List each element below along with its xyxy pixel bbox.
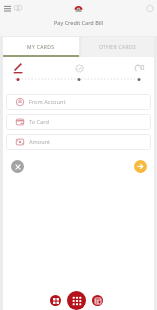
button[interactable]: Quick links — [50, 295, 61, 306]
staticText: MY CARDS — [27, 44, 55, 51]
button[interactable]: Next — [134, 160, 147, 173]
staticText: From Account — [29, 98, 66, 106]
button[interactable]: All services — [67, 291, 86, 310]
staticText: To Card — [29, 118, 49, 126]
button[interactable]: Step 1 — [10, 57, 26, 84]
staticText: Pay Credit Card Bill — [54, 19, 103, 26]
staticText: Amount — [29, 138, 51, 146]
staticText: OTHER CARDS — [99, 44, 137, 51]
button[interactable]: MY CARDS — [3, 37, 79, 57]
button[interactable]: From Account — [6, 94, 151, 110]
button[interactable]: Calculator — [92, 295, 103, 306]
button[interactable]: To Card — [6, 114, 151, 130]
button[interactable]: OTHER CARDS — [82, 37, 154, 57]
button[interactable]: Search — [12, 2, 24, 14]
button[interactable]: Notifications — [144, 2, 156, 14]
button[interactable]: Cancel — [11, 160, 24, 173]
button[interactable]: Step 3 — [131, 57, 147, 84]
button[interactable]: Amount — [6, 134, 151, 150]
button[interactable]: Step 2 — [71, 57, 87, 84]
button[interactable]: Menu — [1, 2, 13, 14]
